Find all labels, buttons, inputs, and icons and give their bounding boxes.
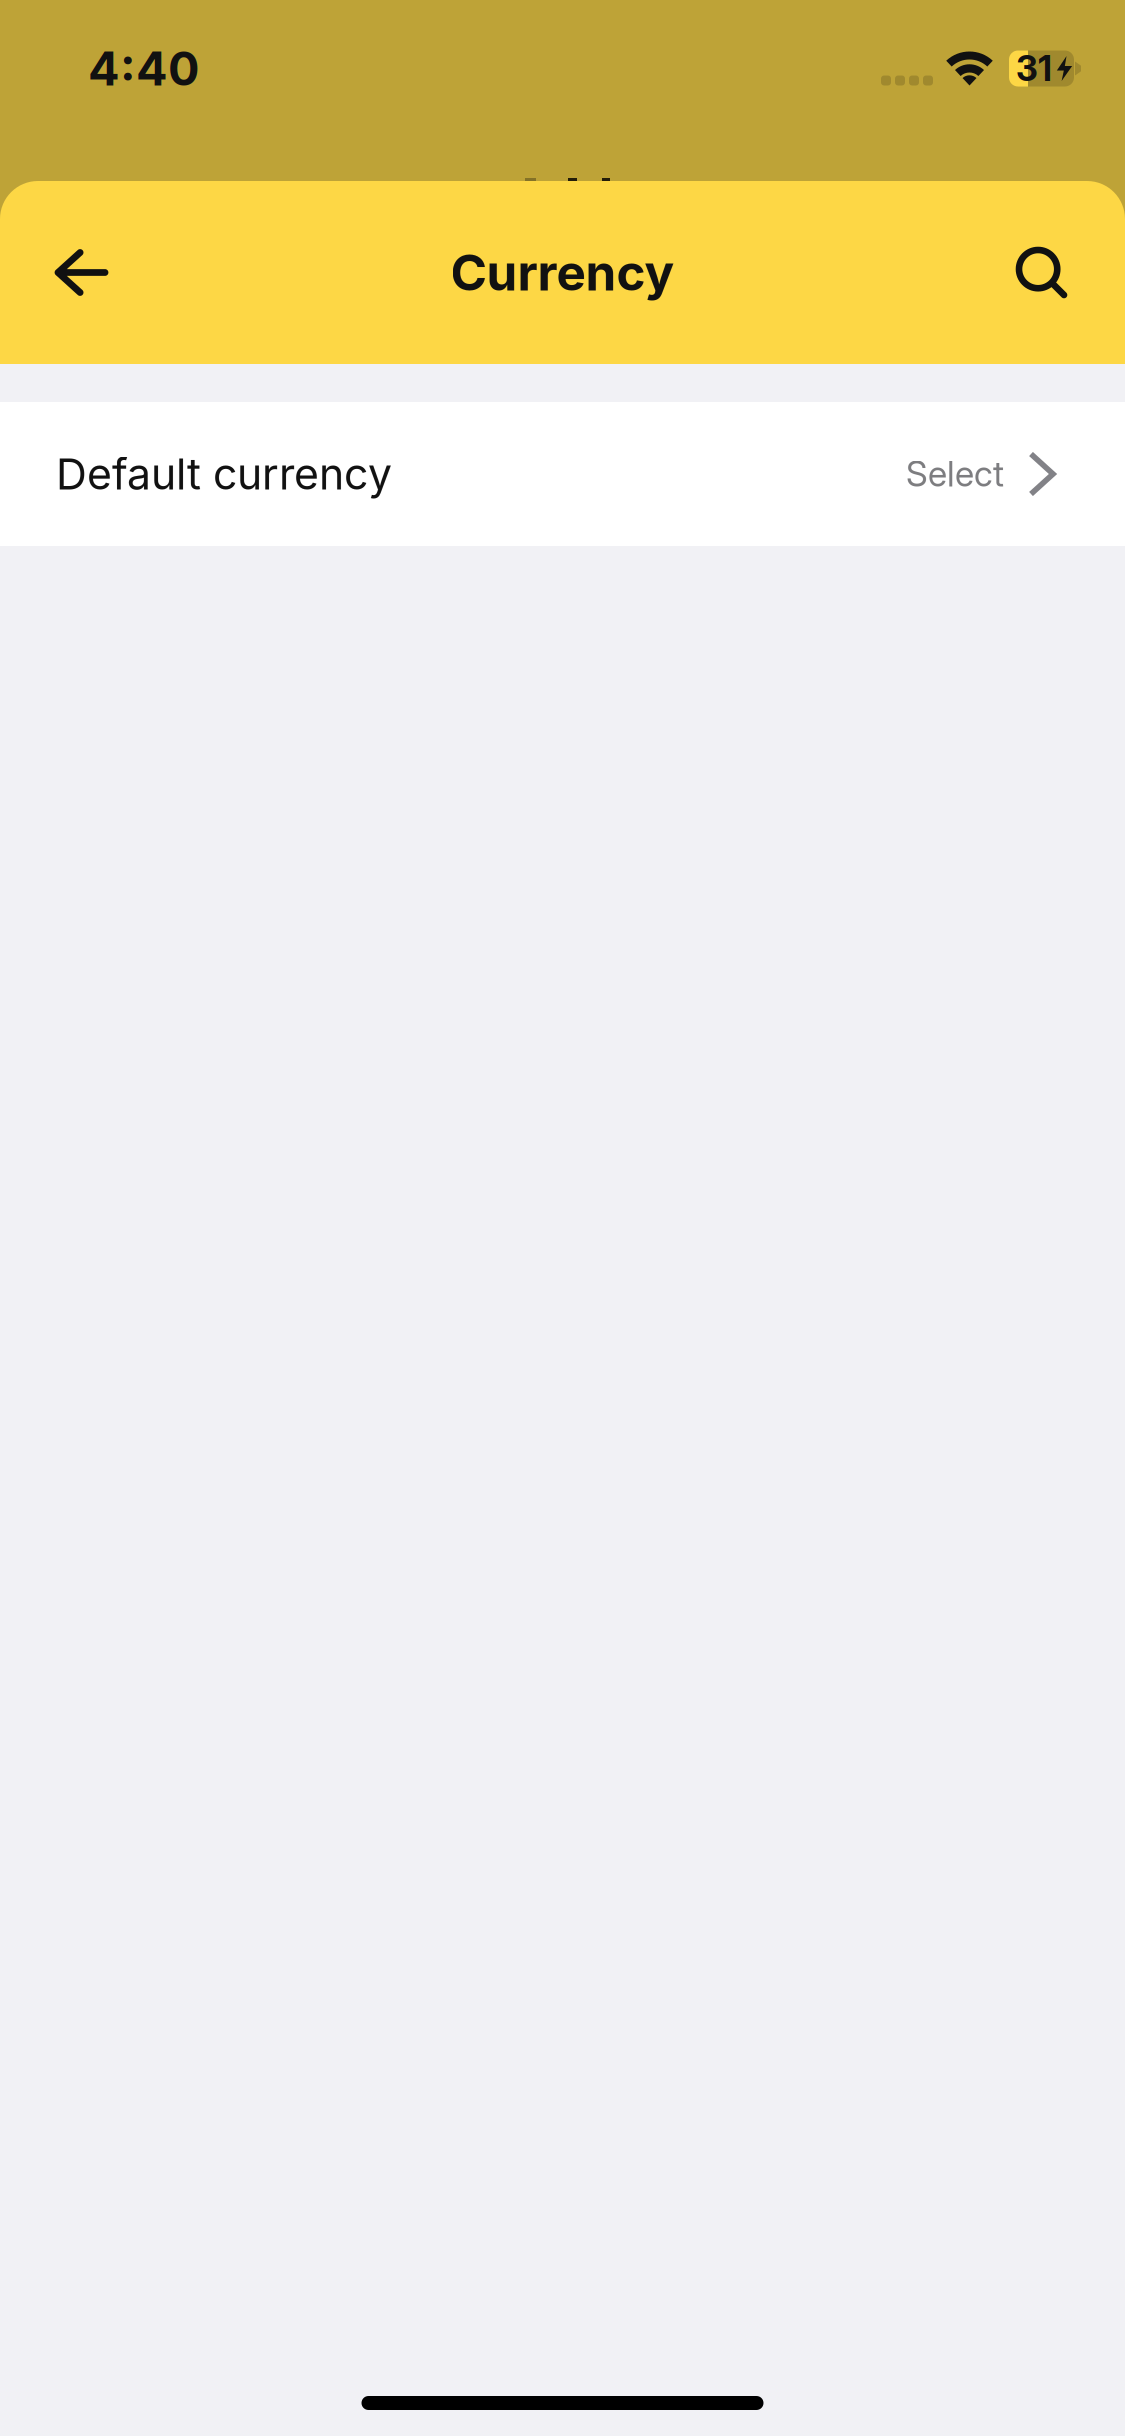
staticText: Select (906, 453, 1004, 495)
staticText: 4:40 (88, 40, 199, 97)
button[interactable]: Back (27, 216, 136, 328)
button[interactable]: Search (989, 216, 1098, 329)
staticText: Default currency (56, 448, 392, 500)
staticText: Currency (450, 243, 674, 302)
button[interactable]: Default currency (0, 402, 1125, 546)
staticText: 31 (1016, 47, 1052, 89)
